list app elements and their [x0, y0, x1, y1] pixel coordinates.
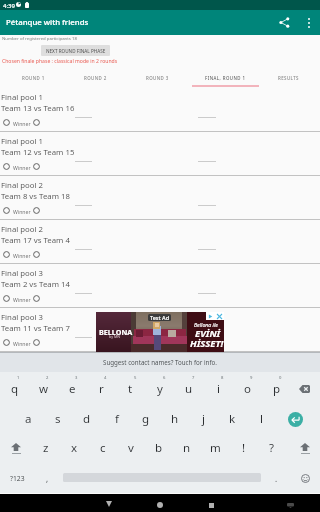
- button[interactable]: g: [131, 404, 160, 434]
- button[interactable]: s: [43, 404, 72, 434]
- button[interactable]: Back: [88, 494, 129, 512]
- staticText: ROUND 1: [22, 75, 45, 81]
- staticText: NEXT ROUND FINAL PHASE: [46, 48, 106, 54]
- staticText: Winner: [13, 120, 31, 127]
- button[interactable]: Backspace: [290, 374, 319, 404]
- button[interactable]: t: [116, 374, 145, 404]
- button[interactable]: RESULTS: [257, 68, 319, 87]
- button[interactable]: ROUND 2: [64, 68, 126, 87]
- button[interactable]: n: [172, 433, 201, 463]
- staticText: n: [183, 440, 191, 456]
- button[interactable]: o: [233, 374, 262, 404]
- button[interactable]: a: [14, 404, 43, 434]
- staticText: x: [71, 440, 78, 456]
- staticText: Test Ad: [150, 314, 170, 321]
- button[interactable]: Final pool 3: [0, 308, 320, 352]
- staticText: z: [43, 440, 49, 456]
- staticText: 0: [279, 375, 282, 381]
- button[interactable]: Share: [272, 10, 296, 35]
- button[interactable]: i: [204, 374, 233, 404]
- button[interactable]: FINAL, ROUND 1: [194, 68, 256, 87]
- button[interactable]: Shift: [1, 433, 31, 463]
- staticText: Final pool 2: [1, 180, 44, 191]
- staticText: s: [55, 411, 61, 427]
- button[interactable]: q: [0, 374, 29, 404]
- staticText: l: [260, 411, 263, 427]
- button[interactable]: Enter: [281, 404, 310, 434]
- button[interactable]: Final pool 1: [0, 88, 320, 132]
- button[interactable]: c: [88, 433, 117, 463]
- button[interactable]: v: [116, 433, 145, 463]
- button[interactable]: b: [144, 433, 173, 463]
- staticText: f: [115, 411, 119, 427]
- button[interactable]: BELLONA: [96, 312, 224, 352]
- button[interactable]: p: [262, 374, 291, 404]
- staticText: Chosen finale phase : classical mode in …: [2, 58, 118, 65]
- button[interactable]: r: [87, 374, 116, 404]
- button[interactable]: u: [174, 374, 203, 404]
- staticText: o: [244, 381, 251, 397]
- button[interactable]: Home: [139, 494, 180, 512]
- staticText: a: [25, 411, 32, 427]
- staticText: j: [202, 411, 205, 427]
- button[interactable]: NEXT ROUND FINAL PHASE: [41, 45, 110, 56]
- button[interactable]: Final pool 2: [0, 220, 320, 264]
- staticText: Team 8 vs Team 18: [1, 191, 70, 202]
- staticText: g: [142, 411, 150, 427]
- staticText: v: [128, 440, 134, 456]
- button[interactable]: Comma: [34, 463, 61, 493]
- button[interactable]: k: [218, 404, 247, 434]
- button[interactable]: l: [247, 404, 276, 434]
- staticText: RESULTS: [278, 75, 299, 81]
- button[interactable]: ROUND 1: [2, 68, 64, 87]
- button[interactable]: ?123: [1, 463, 33, 493]
- staticText: 5: [134, 375, 137, 381]
- staticText: Final pool 1: [1, 136, 44, 147]
- staticText: p: [273, 381, 281, 397]
- button[interactable]: Final pool 1: [0, 132, 320, 176]
- button[interactable]: h: [160, 404, 189, 434]
- button[interactable]: Final pool 3: [0, 264, 320, 308]
- staticText: y: [157, 381, 163, 397]
- button[interactable]: d: [72, 404, 101, 434]
- staticText: 9: [250, 375, 253, 381]
- staticText: Final pool 3: [1, 312, 44, 323]
- button[interactable]: Shift: [290, 433, 320, 463]
- staticText: 3: [75, 375, 78, 381]
- button[interactable]: f: [102, 404, 131, 434]
- button[interactable]: Hide keyboard: [276, 494, 304, 512]
- staticText: r: [99, 381, 104, 397]
- button[interactable]: y: [145, 374, 174, 404]
- staticText: FINAL, ROUND 1: [205, 75, 246, 81]
- staticText: t: [128, 381, 133, 397]
- staticText: by MN: [109, 334, 120, 339]
- button[interactable]: Recents: [191, 494, 232, 512]
- button[interactable]: e: [58, 374, 87, 404]
- staticText: m: [210, 440, 221, 456]
- button[interactable]: Suggest contact names? Touch for info.: [0, 353, 320, 372]
- button[interactable]: Space: [61, 463, 263, 493]
- staticText: Team 12 vs Team 15: [1, 147, 75, 158]
- button[interactable]: w: [29, 374, 58, 404]
- staticText: 7: [192, 375, 195, 381]
- button[interactable]: m: [201, 433, 230, 463]
- staticText: c: [100, 440, 106, 456]
- staticText: Winner: [13, 164, 31, 171]
- button[interactable]: ?: [257, 433, 286, 463]
- button[interactable]: x: [60, 433, 89, 463]
- staticText: 4: [104, 375, 107, 381]
- button[interactable]: Final pool 2: [0, 176, 320, 220]
- staticText: EVİNİ: [195, 327, 221, 340]
- button[interactable]: Emoji: [291, 463, 320, 493]
- button[interactable]: j: [189, 404, 218, 434]
- button[interactable]: More options: [298, 10, 320, 35]
- staticText: Suggest contact names? Touch for info.: [103, 358, 217, 366]
- staticText: Winner: [13, 296, 31, 303]
- staticText: 8: [221, 375, 224, 381]
- button[interactable]: Period: [263, 463, 289, 493]
- button[interactable]: ROUND 3: [126, 68, 188, 87]
- staticText: u: [185, 381, 193, 397]
- staticText: .: [275, 473, 278, 484]
- button[interactable]: z: [31, 433, 60, 463]
- button[interactable]: !: [229, 433, 258, 463]
